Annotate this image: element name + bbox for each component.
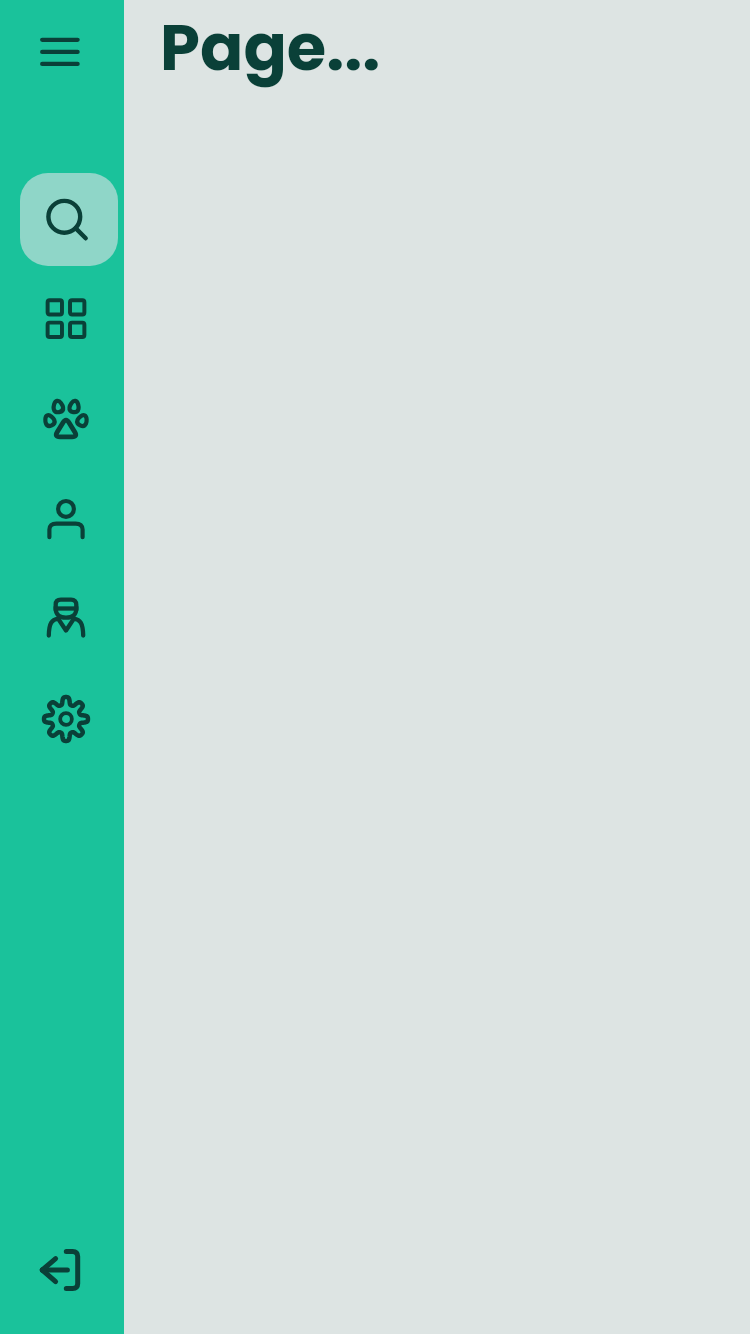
button[interactable]: Dashboard: [31, 284, 101, 354]
button[interactable]: Staff: [31, 584, 101, 654]
button[interactable]: Profile: [31, 484, 101, 554]
button[interactable]: Settings: [31, 684, 101, 754]
button[interactable]: Menu: [30, 20, 90, 84]
staticText: Page...: [160, 3, 381, 93]
button[interactable]: Pets: [31, 384, 101, 454]
button[interactable]: Log out: [31, 1235, 101, 1305]
button[interactable]: Search: [20, 173, 118, 266]
